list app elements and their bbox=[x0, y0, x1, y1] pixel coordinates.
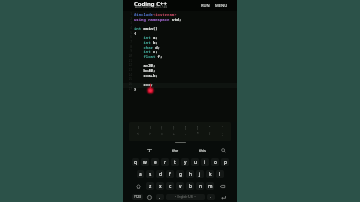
staticText: h bbox=[189, 171, 192, 178]
button[interactable]: Enter bbox=[217, 194, 229, 200]
button[interactable]: o bbox=[211, 158, 219, 166]
button[interactable]: MENU bbox=[214, 1, 229, 11]
button[interactable]: g bbox=[176, 170, 184, 178]
button[interactable]: h bbox=[186, 170, 194, 178]
staticText: 11 bbox=[123, 59, 132, 63]
button[interactable]: j bbox=[196, 170, 204, 178]
button[interactable]: Search bbox=[216, 144, 231, 156]
staticText: Coding C++ bbox=[134, 0, 167, 8]
staticText: ( bbox=[138, 126, 139, 130]
staticText: u bbox=[194, 159, 197, 166]
button[interactable]: e bbox=[151, 158, 159, 166]
button[interactable]: x bbox=[156, 182, 164, 190]
staticText: { bbox=[161, 126, 163, 130]
button[interactable]: * bbox=[192, 131, 204, 137]
button[interactable]: Backspace bbox=[216, 182, 229, 190]
staticText: #include<iostream> bbox=[134, 12, 177, 17]
staticText: > bbox=[149, 132, 151, 136]
button[interactable]: = bbox=[156, 131, 168, 137]
button[interactable]: . bbox=[207, 194, 215, 200]
button[interactable]: > bbox=[144, 131, 156, 137]
button[interactable]: y bbox=[181, 158, 189, 166]
staticText: q bbox=[134, 159, 137, 166]
button[interactable]: "I" bbox=[136, 144, 162, 156]
button[interactable]: z bbox=[146, 182, 154, 190]
staticText: e bbox=[154, 159, 157, 166]
button[interactable]: ) bbox=[144, 125, 156, 131]
staticText: p bbox=[224, 159, 227, 166]
button[interactable]: / bbox=[204, 131, 216, 137]
staticText: m bbox=[208, 183, 213, 190]
button[interactable]: ?123 bbox=[132, 194, 143, 200]
button[interactable]: t bbox=[171, 158, 179, 166]
staticText: s bbox=[149, 171, 152, 178]
button[interactable]: Shift bbox=[132, 182, 144, 190]
button[interactable]: d bbox=[156, 170, 164, 178]
staticText: using namespace std; bbox=[134, 17, 182, 22]
button[interactable]: f bbox=[166, 170, 174, 178]
staticText: RUN bbox=[201, 3, 210, 9]
staticText: int c; bbox=[134, 49, 158, 54]
button[interactable]: + bbox=[168, 131, 180, 137]
button[interactable]: • English (US) • bbox=[166, 194, 205, 200]
staticText: 10 bbox=[123, 54, 132, 58]
staticText: < bbox=[137, 132, 139, 136]
staticText: 4 bbox=[123, 26, 132, 30]
staticText: w bbox=[143, 159, 147, 166]
staticText: int a; bbox=[134, 35, 158, 40]
staticText: v bbox=[179, 183, 182, 190]
staticText: float f; bbox=[134, 54, 163, 59]
staticText: c bbox=[169, 183, 172, 190]
button[interactable]: p bbox=[221, 158, 229, 166]
button[interactable]: n bbox=[196, 182, 204, 190]
staticText: y bbox=[184, 159, 187, 166]
staticText: , bbox=[159, 194, 161, 200]
button[interactable]: l bbox=[216, 170, 224, 178]
button[interactable]: i bbox=[201, 158, 209, 166]
button[interactable]: this bbox=[189, 144, 216, 156]
button[interactable]: c bbox=[166, 182, 174, 190]
staticText: i bbox=[204, 159, 206, 166]
staticText: x bbox=[159, 183, 162, 190]
staticText: f bbox=[169, 171, 171, 178]
button[interactable]: ( bbox=[132, 125, 144, 131]
button[interactable]: v bbox=[176, 182, 184, 190]
staticText: r bbox=[164, 159, 166, 166]
button[interactable]: w bbox=[141, 158, 149, 166]
button[interactable]: q bbox=[132, 158, 139, 166]
button[interactable]: b bbox=[186, 182, 194, 190]
button[interactable]: s bbox=[146, 170, 154, 178]
button[interactable]: } bbox=[168, 125, 180, 131]
button[interactable]: r bbox=[161, 158, 169, 166]
button[interactable]: RUN bbox=[200, 1, 211, 11]
staticText: ; bbox=[222, 132, 223, 136]
button[interactable]: Emoji bbox=[145, 194, 154, 200]
staticText: this bbox=[199, 148, 206, 153]
button[interactable]: u bbox=[191, 158, 199, 166]
staticText: . bbox=[210, 194, 212, 200]
staticText: [ bbox=[185, 126, 187, 130]
button[interactable]: [ bbox=[180, 125, 192, 131]
staticText: the bbox=[172, 148, 179, 153]
button[interactable]: ] bbox=[192, 125, 204, 131]
staticText: - bbox=[185, 132, 187, 136]
staticText: ) bbox=[150, 126, 151, 130]
button[interactable]: { bbox=[156, 125, 168, 131]
button[interactable]: a bbox=[137, 170, 144, 178]
staticText: • English (US) • bbox=[175, 195, 196, 199]
button[interactable]: m bbox=[206, 182, 214, 190]
button[interactable]: k bbox=[206, 170, 214, 178]
staticText: MENU bbox=[215, 3, 228, 9]
staticText: "I" bbox=[147, 148, 152, 153]
button[interactable]: , bbox=[156, 194, 164, 200]
staticText: a=20; bbox=[134, 63, 156, 68]
button[interactable]: " bbox=[204, 125, 216, 131]
button[interactable]: < bbox=[132, 131, 144, 137]
staticText: d bbox=[159, 171, 162, 178]
button[interactable]: the bbox=[162, 144, 189, 156]
